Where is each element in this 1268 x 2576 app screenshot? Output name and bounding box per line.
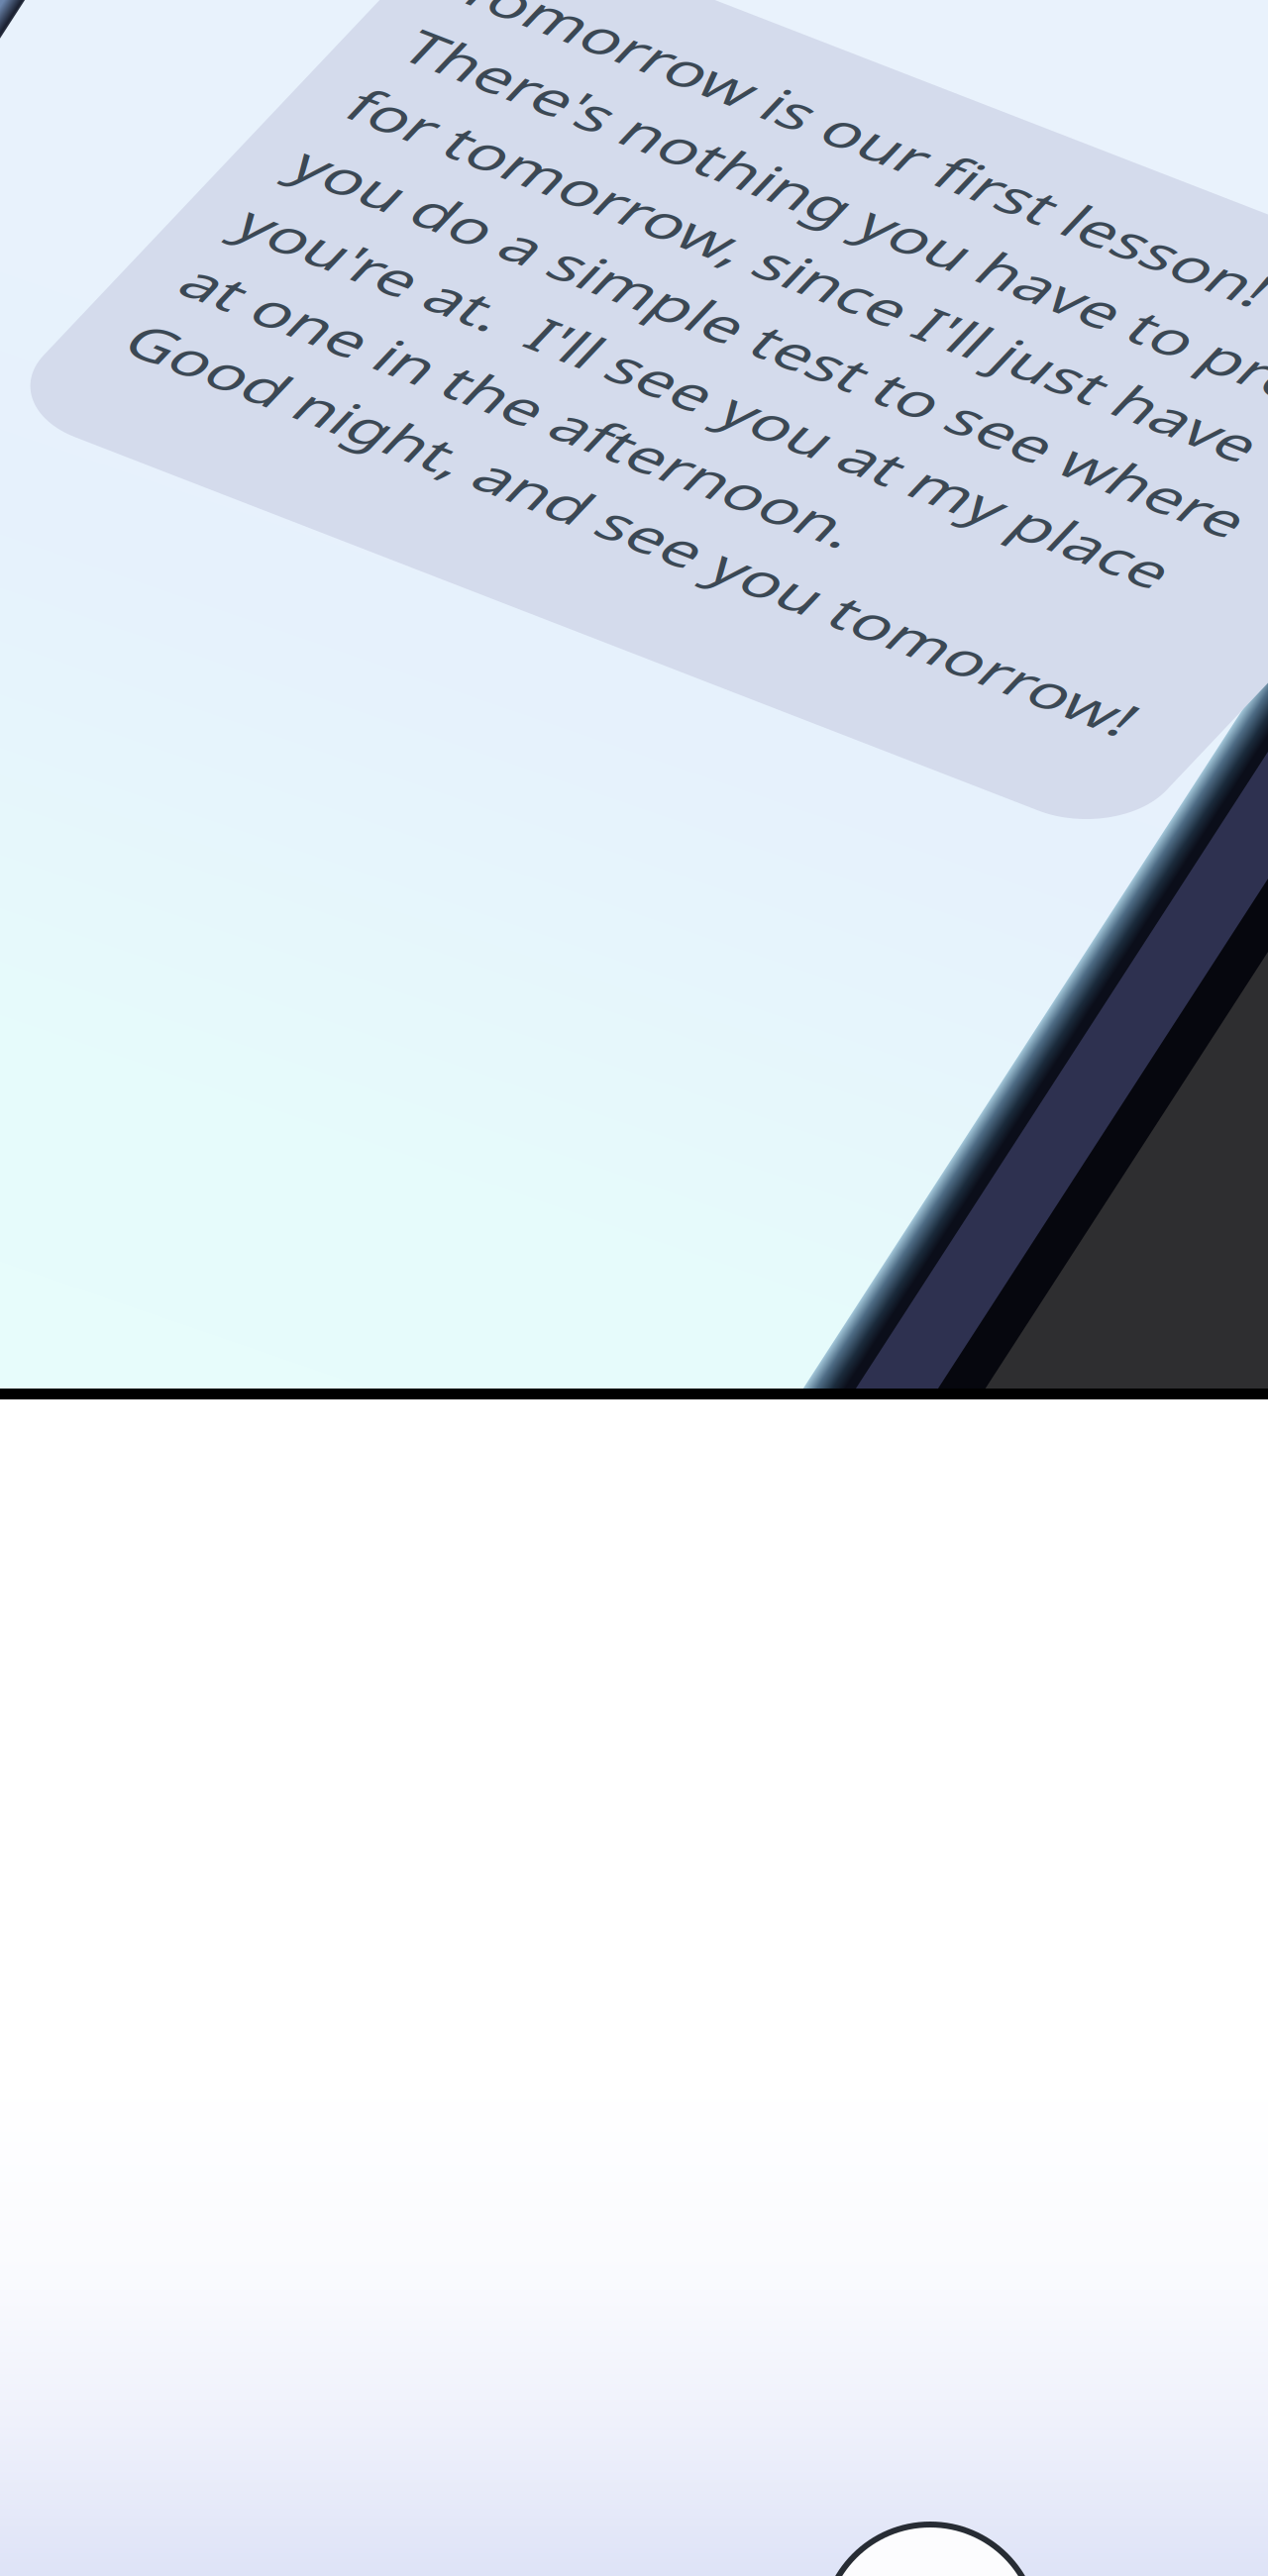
staticText: you do a simple test to see where: [539, 348, 1268, 457]
staticText: you're at. I'll see you at my place: [539, 473, 1268, 581]
staticText: Tomorrow is our first lesson!: [539, 0, 1268, 83]
button[interactable]: Action: [823, 2524, 1037, 2576]
staticText: at one in the afternoon.: [539, 597, 1268, 706]
staticText: There's nothing you have to prepare: [539, 99, 1268, 208]
staticText: Good night, and see you tomorrow!: [539, 722, 1268, 830]
staticText: for tomorrow, since I'll just have: [539, 223, 1268, 332]
